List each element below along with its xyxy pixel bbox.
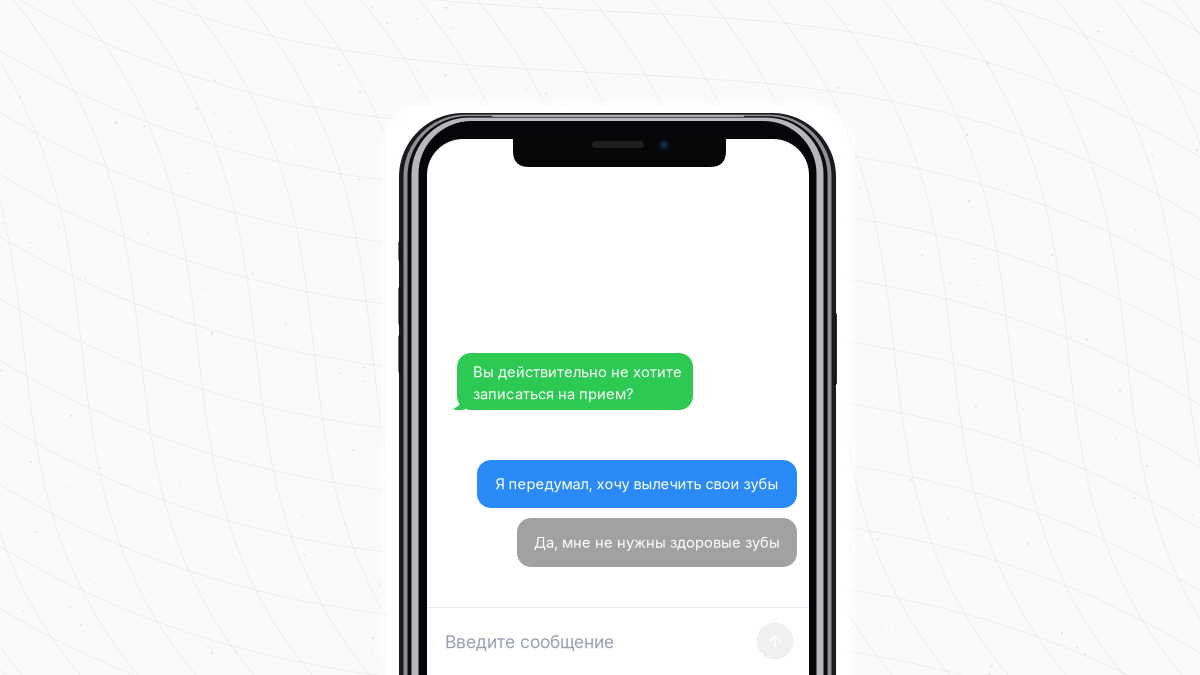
button[interactable]: Введите сообщение xyxy=(445,622,685,662)
button[interactable]: Send message xyxy=(752,618,798,664)
button[interactable]: Я передумал, хочу вылечить свои зубы xyxy=(477,460,797,508)
staticText: Введите сообщение xyxy=(445,631,614,652)
staticText: Да, мне не нужны здоровые зубы xyxy=(534,534,780,551)
staticText: Я передумал, хочу вылечить свои зубы xyxy=(495,475,778,493)
button[interactable]: Да, мне не нужны здоровые зубы xyxy=(517,518,797,567)
staticText: записаться на прием? xyxy=(473,385,633,403)
button[interactable]: Вы действительно не хотите xyxy=(451,353,693,413)
staticText: Вы действительно не хотите xyxy=(473,363,682,381)
